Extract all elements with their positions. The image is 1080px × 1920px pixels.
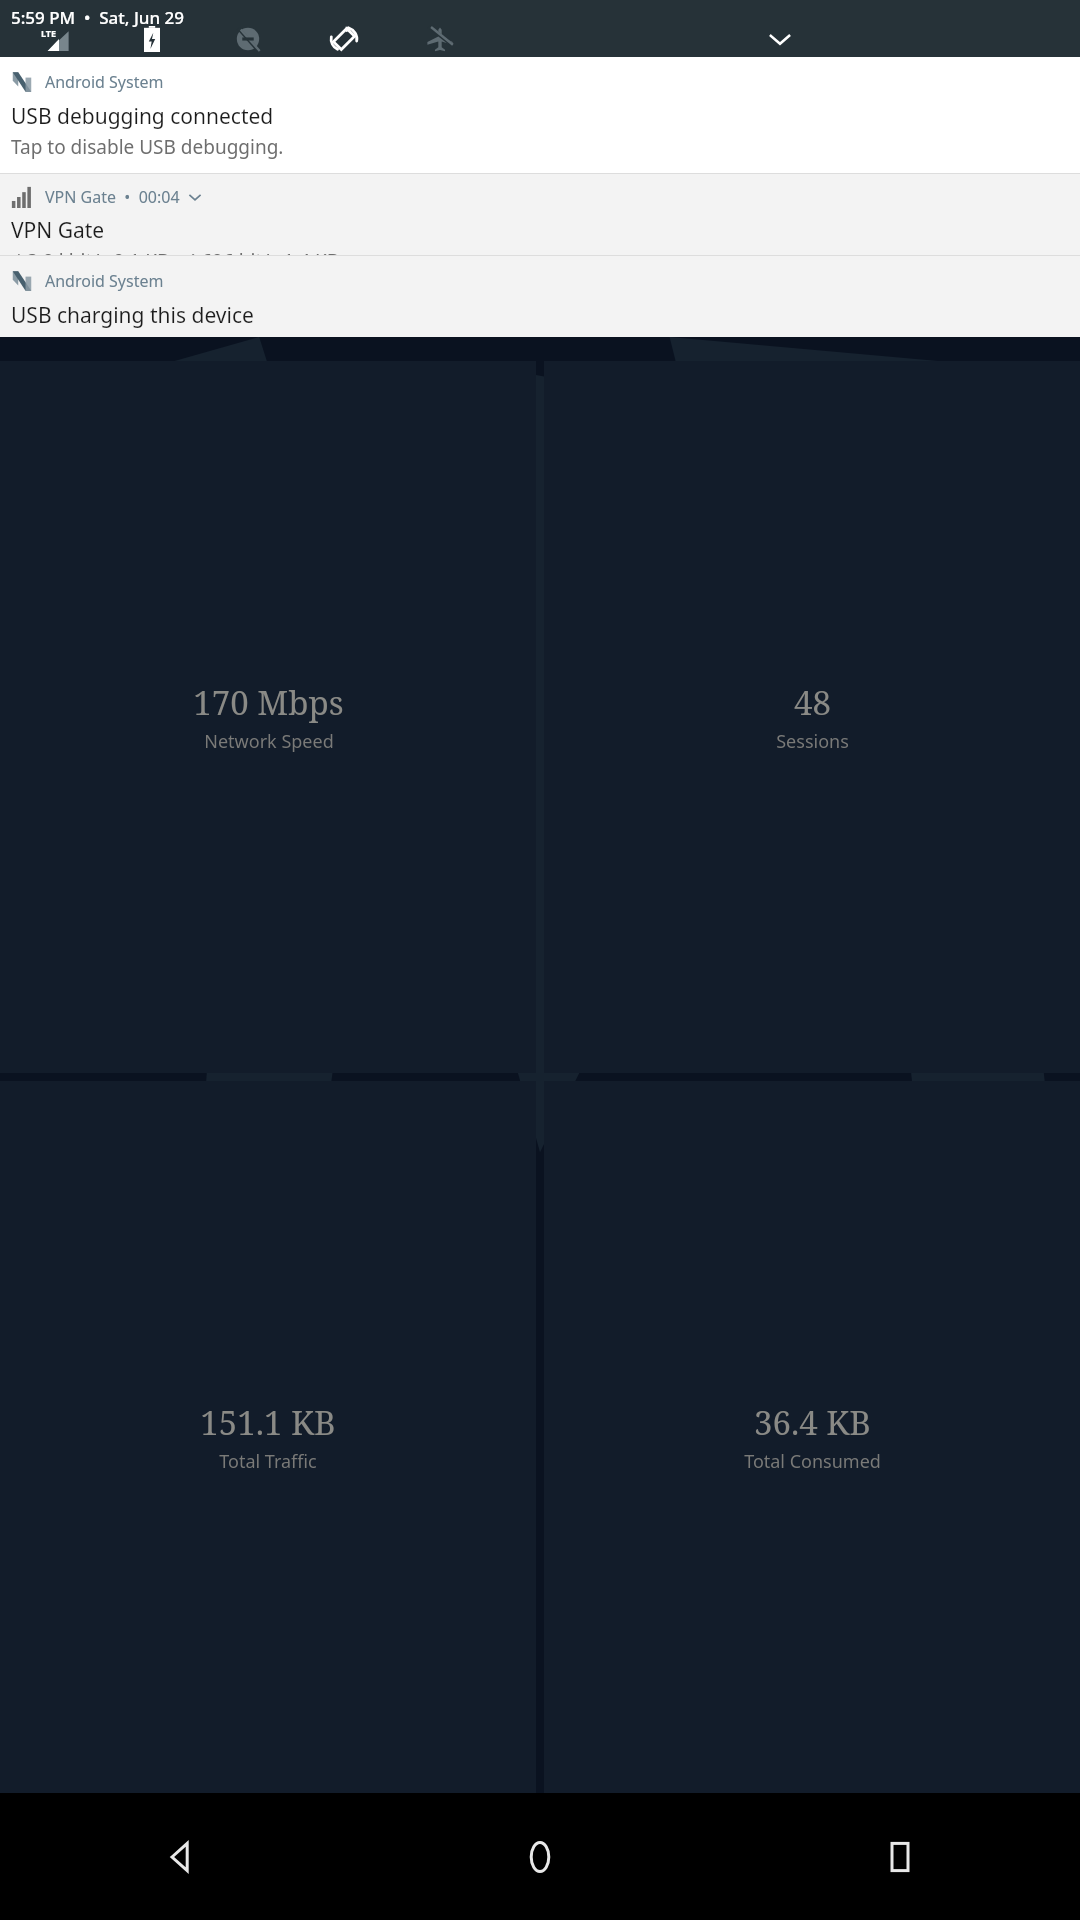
button[interactable]: Android System bbox=[0, 256, 1080, 337]
staticText: 48 bbox=[794, 680, 831, 725]
staticText: Network Speed bbox=[204, 729, 334, 754]
staticText: Total Traffic bbox=[219, 1449, 317, 1474]
button[interactable]: Expand quick settings bbox=[488, 26, 1072, 52]
button[interactable]: 48 bbox=[544, 361, 1080, 1073]
button[interactable]: Home bbox=[360, 1793, 720, 1920]
staticText: 36.4 KB bbox=[754, 1400, 871, 1445]
staticText: Android System bbox=[45, 270, 164, 292]
staticText: LTE bbox=[41, 27, 57, 39]
button[interactable]: Android System bbox=[0, 57, 1080, 173]
button[interactable]: Recent apps bbox=[720, 1793, 1080, 1920]
button[interactable]: Back bbox=[0, 1793, 360, 1920]
staticText: VPN Gate • 00:04 bbox=[45, 186, 180, 208]
staticText: Sessions bbox=[776, 729, 849, 754]
staticText: ↓3.9 kbit/s 9.1 KB - ↑696 bit/s 1.4 KB bbox=[11, 248, 340, 255]
staticText: 151.1 KB bbox=[200, 1400, 336, 1445]
button[interactable]: 170 Mbps bbox=[0, 361, 536, 1073]
staticText: Android System bbox=[45, 71, 164, 93]
button[interactable]: 151.1 KB bbox=[0, 1081, 536, 1793]
staticText: Total Consumed bbox=[744, 1449, 881, 1474]
staticText: 5:59 PM • Sat, Jun 29 bbox=[11, 6, 185, 29]
button[interactable]: 36.4 KB bbox=[544, 1081, 1080, 1793]
staticText: 170 Mbps bbox=[193, 680, 344, 725]
staticText: VPN Gate bbox=[11, 216, 105, 245]
staticText: USB debugging connected bbox=[11, 102, 274, 131]
staticText: Tap to disable USB debugging. bbox=[11, 134, 284, 160]
button[interactable]: VPN Gate • 00:04 bbox=[0, 174, 1080, 255]
staticText: USB charging this device bbox=[11, 301, 254, 330]
